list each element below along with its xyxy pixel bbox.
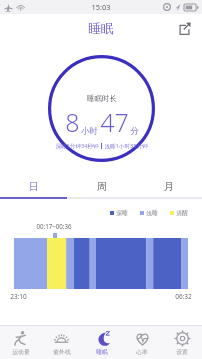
- staticText: 心率: [136, 348, 148, 355]
- staticText: 06:32: [175, 292, 192, 301]
- button[interactable]: Share: [174, 18, 194, 38]
- staticText: 运动量: [12, 348, 30, 355]
- staticText: 分: [130, 126, 139, 137]
- button[interactable]: 睡眠: [82, 326, 122, 359]
- button[interactable]: 月: [135, 176, 202, 197]
- staticText: 睡眠: [88, 20, 114, 36]
- staticText: 00:17~00:36: [36, 222, 72, 230]
- staticText: 8: [65, 105, 80, 139]
- staticText: 日: [29, 180, 39, 193]
- staticText: 47: [100, 105, 129, 139]
- button[interactable]: 紫外线: [41, 326, 82, 359]
- button[interactable]: 周: [68, 176, 135, 197]
- staticText: 设置: [176, 348, 188, 355]
- button[interactable]: 日: [0, 176, 68, 197]
- staticText: 23:10: [10, 292, 27, 301]
- staticText: 清醒: [176, 209, 188, 216]
- button[interactable]: 设置: [162, 326, 202, 359]
- staticText: 紫外线: [53, 348, 71, 355]
- staticText: 浅睡: [146, 209, 158, 216]
- staticText: 15:03: [91, 2, 111, 12]
- staticText: 睡眠: [96, 348, 108, 355]
- staticText: 睡眠时长: [87, 94, 117, 103]
- button[interactable]: 运动量: [0, 326, 41, 359]
- staticText: 浅睡1小时35分钟: [104, 142, 148, 150]
- staticText: 小时: [81, 126, 98, 137]
- staticText: 月: [164, 180, 174, 193]
- staticText: 深睡5分钟34秒钟: [55, 142, 99, 150]
- staticText: 周: [97, 180, 107, 193]
- button[interactable]: 心率: [122, 326, 162, 359]
- staticText: 深睡: [116, 209, 128, 216]
